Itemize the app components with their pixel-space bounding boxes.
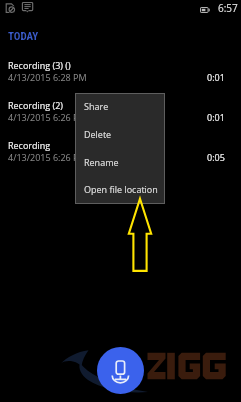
staticText: Share <box>84 100 109 112</box>
button[interactable]: Open file location <box>76 178 164 203</box>
staticText: Recording (2) <box>8 99 63 111</box>
button[interactable]: Messages <box>20 1 34 15</box>
staticText: 4/13/2015 6:26 PM <box>8 151 87 163</box>
button[interactable]: Recording (2) <box>0 99 241 139</box>
staticText: TODAY <box>8 30 39 43</box>
staticText: 6:57 <box>218 1 238 15</box>
staticText: Rename <box>84 156 119 168</box>
staticText: 4/13/2015 6:26 PM <box>8 111 87 123</box>
button[interactable]: Sync disabled <box>3 1 17 15</box>
staticText: 0:01 <box>207 111 225 123</box>
staticText: Recording (3) () <box>8 59 71 71</box>
button[interactable]: Recording (3) () <box>0 59 241 99</box>
button[interactable]: Rename <box>76 150 164 178</box>
staticText: Open file location <box>84 183 158 195</box>
button[interactable]: Recording <box>0 139 241 179</box>
button[interactable]: Delete <box>76 122 164 150</box>
staticText: 4/13/2015 6:28 PM <box>8 71 87 83</box>
staticText: 0:05 <box>207 151 225 163</box>
staticText: 0:01 <box>207 71 225 83</box>
staticText: Recording <box>8 139 51 151</box>
button[interactable]: Share <box>76 94 164 122</box>
button[interactable]: Record <box>97 347 144 394</box>
staticText: Delete <box>84 128 112 140</box>
